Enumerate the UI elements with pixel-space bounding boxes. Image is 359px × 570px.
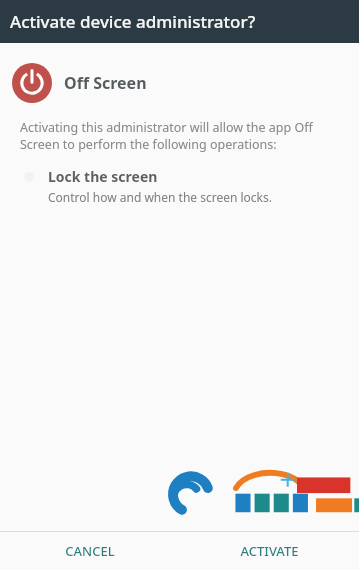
- staticText: Control how and when the screen locks.: [48, 189, 272, 205]
- staticText: Activating this administrator will allow…: [20, 119, 343, 153]
- button[interactable]: ACTIVATE: [179, 532, 359, 570]
- staticText: ACTIVATE: [240, 542, 299, 560]
- other: Off Screen app icon: [12, 63, 52, 103]
- staticText: Off Screen: [64, 72, 147, 94]
- staticText: Activate device administrator?: [10, 10, 256, 33]
- staticText: CANCEL: [65, 542, 115, 560]
- staticText: Lock the screen: [48, 167, 158, 186]
- button[interactable]: CANCEL: [0, 532, 179, 570]
